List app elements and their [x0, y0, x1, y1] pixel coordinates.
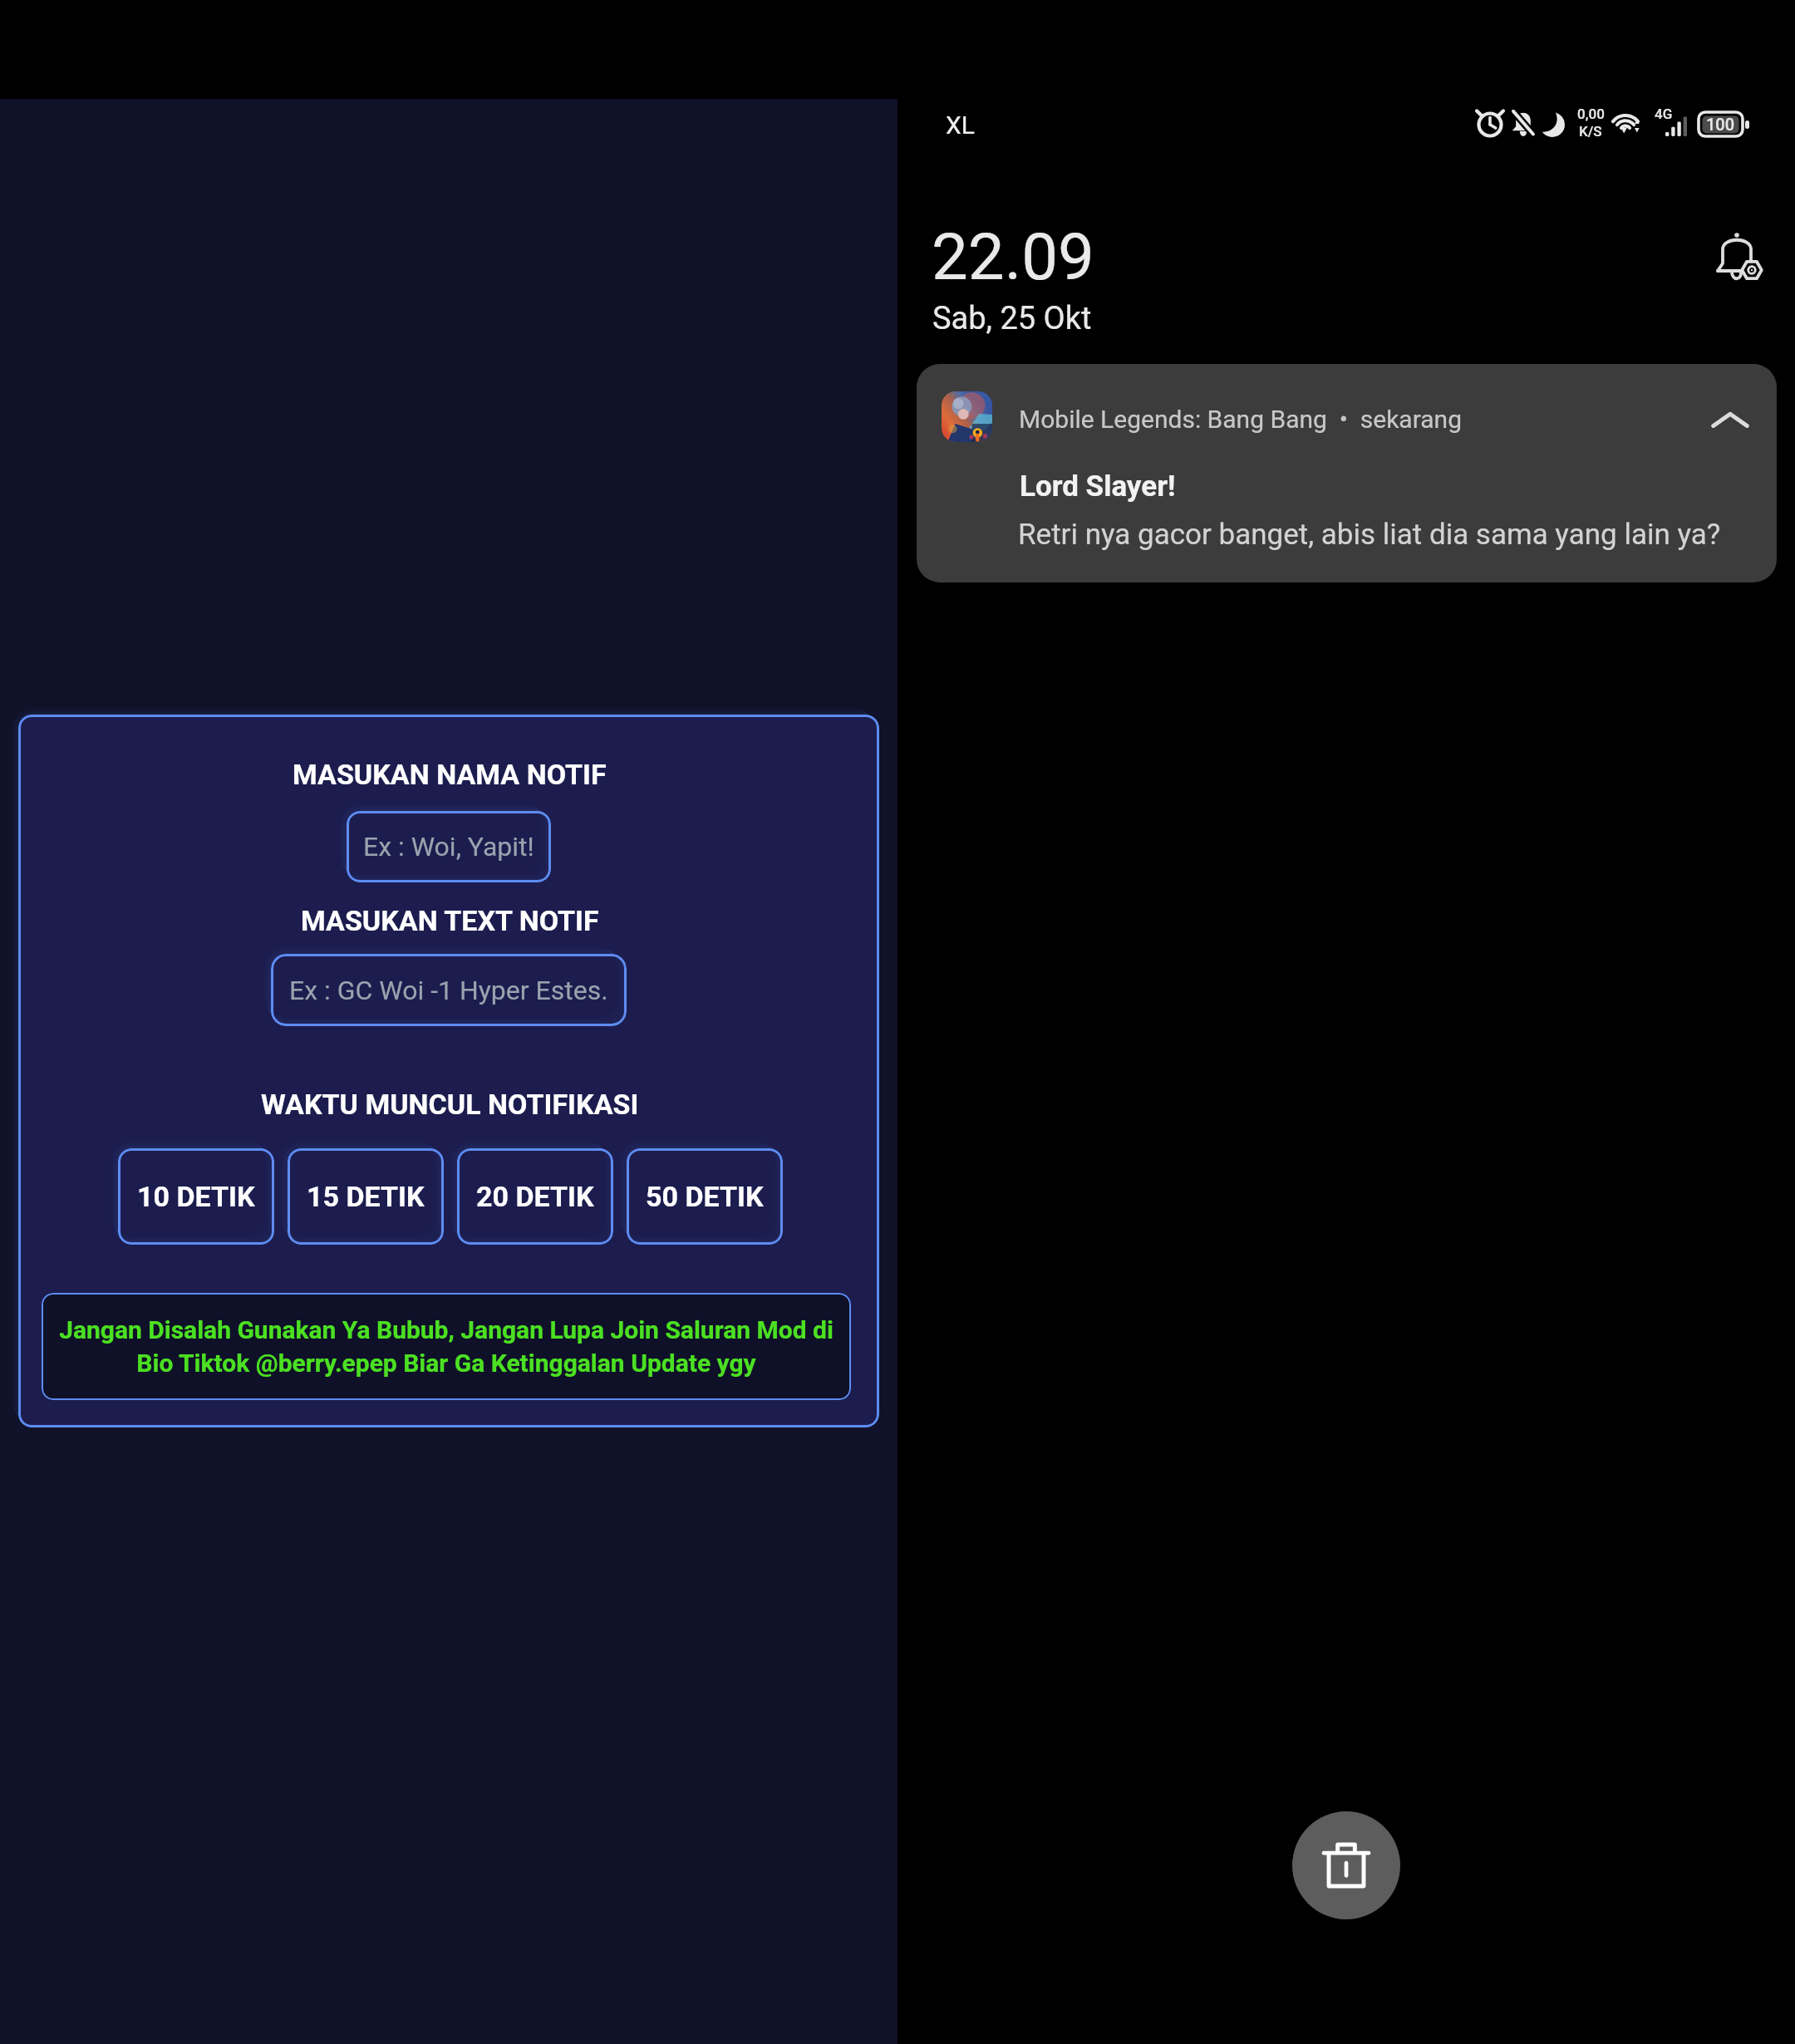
button[interactable]: 15 DETIK [288, 1148, 444, 1245]
button[interactable]: Collapse notification [1700, 391, 1760, 450]
button[interactable]: Notification settings [1712, 229, 1767, 284]
button[interactable]: 50 DETIK [627, 1148, 783, 1245]
staticText: 10 DETIK [137, 1180, 255, 1213]
button[interactable]: 10 DETIK [118, 1148, 274, 1245]
button[interactable]: Ex : Woi, Yapit! [347, 811, 551, 882]
staticText: MASUKAN TEXT NOTIF [301, 904, 599, 937]
staticText: 100 [1706, 115, 1735, 134]
staticText: MASUKAN NAMA NOTIF [293, 758, 607, 791]
button[interactable]: 20 DETIK [457, 1148, 613, 1245]
staticText: 0,00 [1577, 106, 1605, 122]
staticText: 15 DETIK [307, 1180, 425, 1213]
staticText: XL [946, 111, 975, 140]
staticText: 20 DETIK [476, 1180, 594, 1213]
staticText: 22.09 [932, 219, 1094, 295]
staticText: 4G [1655, 106, 1673, 122]
staticText: 50 DETIK [646, 1180, 764, 1213]
staticText: Ex : Woi, Yapit! [363, 831, 534, 862]
staticText: Sab, 25 Okt [932, 300, 1092, 337]
staticText: Jangan Disalah Gunakan Ya Bubub, Jangan … [59, 1315, 834, 1378]
button[interactable]: Ex : GC Woi -1 Hyper Estes. [271, 954, 627, 1026]
staticText: Mobile Legends: Bang Bang • sekarang [1019, 405, 1462, 434]
staticText: Lord Slayer! [1020, 469, 1176, 504]
button[interactable]: Mobile Legends: Bang Bang • sekarang [917, 364, 1777, 582]
staticText: Ex : GC Woi -1 Hyper Estes. [289, 975, 608, 1006]
button[interactable]: Clear all notifications [1292, 1811, 1400, 1919]
staticText: Retri nya gacor banget, abis liat dia sa… [1018, 518, 1721, 552]
staticText: WAKTU MUNCUL NOTIFIKASI [261, 1088, 639, 1121]
staticText: K/S [1579, 123, 1602, 140]
